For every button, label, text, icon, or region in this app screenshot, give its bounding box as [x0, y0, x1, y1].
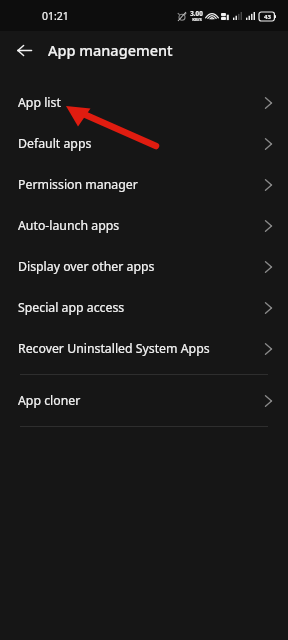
button[interactable]: Special app access: [0, 287, 288, 328]
button[interactable]: Recover Uninstalled System Apps: [0, 328, 288, 369]
staticText: Auto-launch apps: [18, 217, 259, 234]
button[interactable]: App cloner: [0, 380, 288, 421]
staticText: 43: [264, 13, 271, 21]
button[interactable]: Default apps: [0, 123, 288, 164]
button[interactable]: Permission manager: [0, 164, 288, 205]
button[interactable]: Auto-launch apps: [0, 205, 288, 246]
staticText: App cloner: [18, 392, 259, 409]
staticText: 01:21: [42, 9, 69, 23]
staticText: 3.00: [190, 9, 203, 17]
staticText: Special app access: [18, 299, 259, 316]
staticText: Display over other apps: [18, 258, 259, 275]
staticText: KB/S: [192, 17, 202, 23]
button[interactable]: App list: [0, 82, 288, 123]
staticText: App list: [18, 94, 259, 111]
button[interactable]: Back: [10, 36, 38, 64]
staticText: Recover Uninstalled System Apps: [18, 340, 259, 357]
button[interactable]: Display over other apps: [0, 246, 288, 287]
staticText: Default apps: [18, 135, 259, 152]
staticText: App management: [48, 40, 173, 60]
staticText: Permission manager: [18, 176, 259, 193]
